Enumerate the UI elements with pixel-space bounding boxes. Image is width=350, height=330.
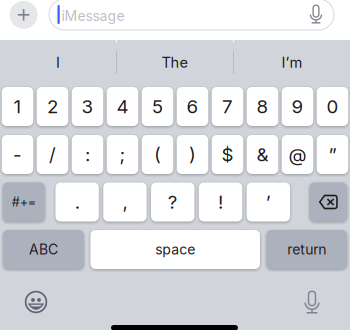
button[interactable]: 5 [142, 87, 173, 126]
button[interactable]: ? [151, 182, 194, 221]
button[interactable]: $ [212, 135, 243, 174]
staticText: ) [189, 143, 196, 166]
staticText: & [256, 143, 268, 166]
staticText: I’m [281, 54, 302, 71]
staticText: 7 [222, 95, 233, 118]
button[interactable]: @ [282, 135, 313, 174]
staticText: , [122, 191, 127, 213]
staticText: The [161, 54, 188, 71]
staticText: 8 [256, 95, 268, 118]
staticText: ABC [29, 241, 58, 258]
staticText: 0 [326, 95, 338, 118]
button[interactable]: - [2, 135, 33, 174]
staticText: / [49, 143, 56, 166]
staticText: ; [119, 143, 125, 166]
button[interactable]: 4 [107, 87, 138, 126]
staticText: 2 [47, 95, 58, 118]
staticText: iMessage [61, 7, 124, 24]
staticText: #+= [12, 194, 36, 210]
staticText: return [287, 241, 326, 258]
button[interactable]: ’ [247, 182, 290, 221]
staticText: space [155, 241, 195, 258]
button[interactable]: 2 [37, 87, 68, 126]
staticText: ! [218, 191, 223, 213]
button[interactable]: Audio message [303, 0, 329, 29]
button[interactable]: Dictation [290, 280, 334, 324]
button[interactable]: The [117, 40, 233, 85]
button[interactable]: 6 [177, 87, 208, 126]
staticText: 4 [116, 95, 128, 118]
button[interactable]: I [0, 40, 116, 85]
staticText: - [13, 143, 22, 166]
staticText: : [85, 143, 90, 166]
button[interactable]: ) [177, 135, 208, 174]
staticText: ’ [266, 191, 271, 213]
staticText: I [56, 54, 60, 71]
staticText: @ [288, 143, 306, 166]
staticText: 3 [81, 95, 93, 118]
button[interactable]: / [37, 135, 68, 174]
button[interactable]: space [90, 230, 260, 269]
staticText: ( [154, 143, 161, 166]
staticText: 9 [291, 95, 303, 118]
button[interactable]: : [72, 135, 103, 174]
button[interactable]: 0 [317, 87, 348, 126]
button[interactable]: , [103, 182, 147, 221]
button[interactable]: ( [142, 135, 173, 174]
button[interactable]: Add attachment [4, 0, 44, 35]
button[interactable]: 7 [212, 87, 243, 126]
button[interactable]: return [267, 230, 347, 269]
button[interactable]: ABC [3, 230, 84, 269]
button[interactable]: Delete [309, 182, 347, 221]
staticText: . [75, 191, 80, 213]
button[interactable]: & [247, 135, 278, 174]
staticText: 1 [13, 95, 21, 118]
button[interactable]: ” [317, 135, 348, 174]
staticText: ” [328, 143, 336, 166]
staticText: 5 [152, 95, 163, 118]
button[interactable]: 1 [2, 87, 33, 126]
staticText: 6 [186, 95, 198, 118]
button[interactable]: ; [107, 135, 138, 174]
button[interactable]: I’m [234, 40, 350, 85]
staticText: $ [221, 143, 233, 166]
button[interactable]: Emoji keyboard [14, 280, 58, 324]
button[interactable]: 8 [247, 87, 278, 126]
staticText: ? [168, 191, 178, 213]
button[interactable]: 3 [72, 87, 103, 126]
button[interactable]: 9 [282, 87, 313, 126]
button[interactable]: #+= [3, 182, 45, 221]
button[interactable]: ! [199, 182, 242, 221]
button[interactable]: . [55, 182, 99, 221]
